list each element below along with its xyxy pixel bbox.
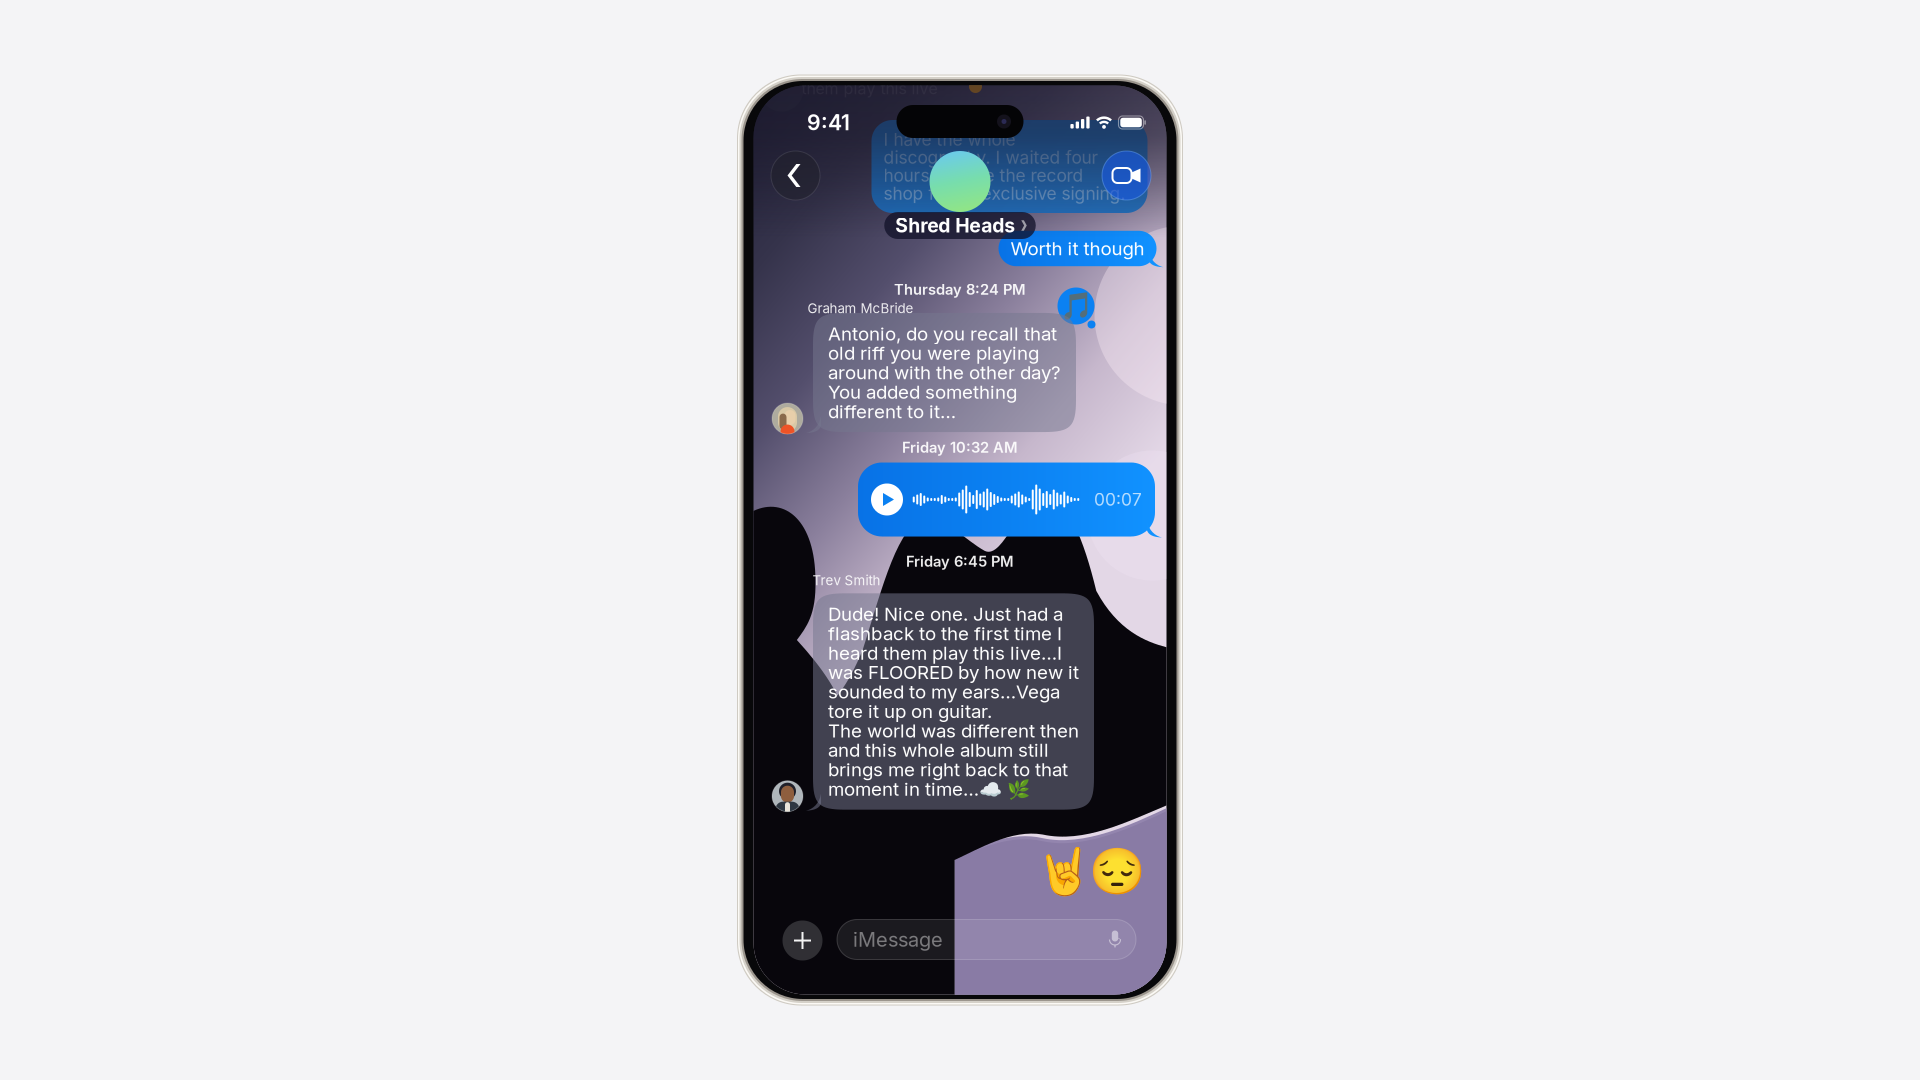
staticText: Worth it though	[1010, 239, 1144, 258]
button[interactable]: Back	[770, 150, 820, 200]
staticText: Friday 10:32 AM	[902, 439, 1018, 455]
button[interactable]: Add attachment	[782, 920, 822, 960]
staticText: 🤘	[1035, 846, 1091, 897]
button[interactable]: FaceTime video call	[1101, 150, 1151, 200]
staticText: Trev Smith	[812, 573, 880, 588]
button[interactable]: Shred Heads	[860, 151, 1060, 240]
staticText: 9:41	[807, 111, 850, 134]
staticText: Dude! Nice one. Just had a flashback to …	[828, 604, 1079, 799]
button[interactable]: Worth it though	[998, 231, 1156, 266]
button[interactable]: Dude! Nice one. Just had a flashback to …	[813, 593, 1094, 810]
staticText: Thursday 8:24 PM	[894, 281, 1026, 297]
staticText: I have the whole discography. I waited f…	[883, 130, 1125, 202]
staticText: them play this live	[801, 80, 937, 97]
button[interactable]: Play audio message, 7 seconds	[858, 462, 1155, 536]
button[interactable]: iMessage	[837, 919, 1136, 959]
staticText: 🎵	[1059, 291, 1092, 321]
staticText: Friday 6:45 PM	[906, 553, 1014, 569]
staticText: iMessage	[853, 929, 943, 950]
staticText: Graham McBride	[807, 301, 913, 316]
button[interactable]: Antonio, do you recall that old riff you…	[813, 313, 1076, 432]
staticText: Shred Heads	[895, 215, 1015, 236]
staticText: 00:07	[1094, 490, 1142, 509]
staticText: Antonio, do you recall that old riff you…	[828, 324, 1061, 421]
staticText: 😔	[1088, 846, 1144, 897]
